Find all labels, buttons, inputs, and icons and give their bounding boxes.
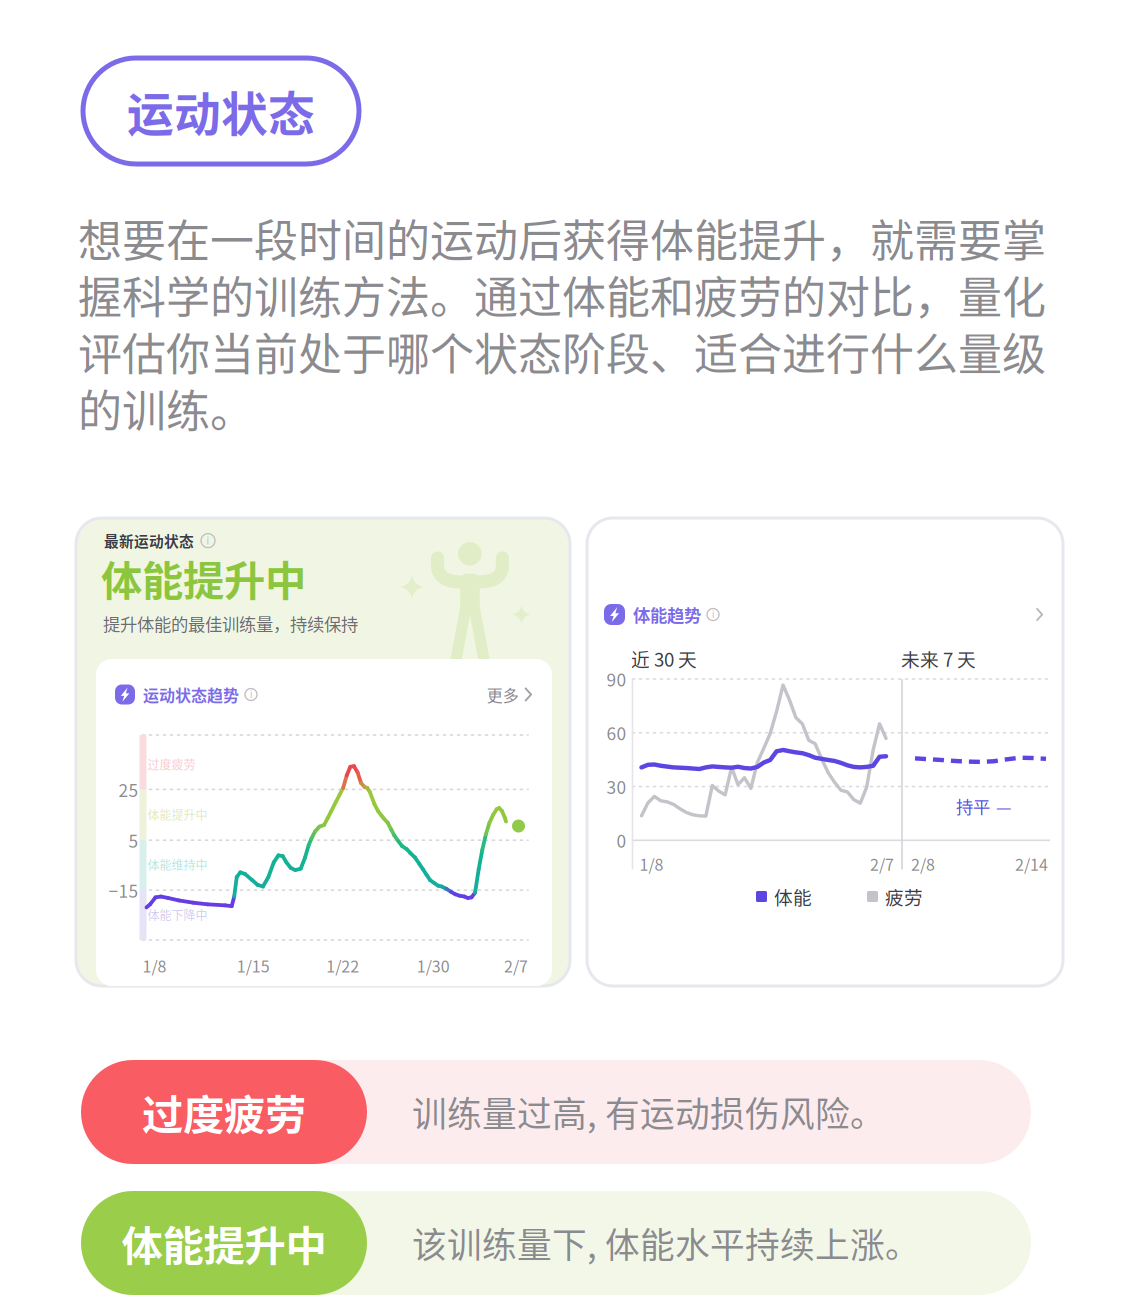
staticText: 2/14: [1015, 852, 1048, 875]
staticText: 更多: [487, 683, 519, 706]
staticText: 体能提升中: [121, 1213, 326, 1273]
staticText: 想要在一段时间的运动后获得体能提升，就需要掌握科学的训练方法。通过体能和疲劳的对…: [78, 206, 1046, 440]
staticText: 2/8: [911, 852, 935, 875]
staticText: 30: [606, 774, 626, 799]
staticText: 2/7: [504, 954, 528, 977]
staticText: 近 30 天: [631, 645, 697, 672]
staticText: 60: [606, 720, 626, 745]
staticText: 体能下降中: [147, 906, 207, 924]
staticText: 5: [128, 828, 138, 853]
staticText: 疲劳: [885, 883, 923, 910]
staticText: 体能趋势: [633, 602, 701, 627]
staticText: 25: [118, 777, 138, 802]
staticText: 提升体能的最佳训练量，持续保持: [103, 611, 358, 636]
button[interactable]: 体能提升中: [81, 1191, 1031, 1295]
staticText: 该训练量下, 体能水平持续上涨。: [412, 1218, 920, 1268]
staticText: 过度疲劳: [147, 755, 195, 773]
staticText: 过度疲劳: [142, 1082, 306, 1142]
staticText: 1/30: [417, 954, 450, 977]
staticText: 训练量过高, 有运动损伤风险。: [412, 1087, 885, 1137]
staticText: 持平: [956, 793, 990, 818]
staticText: 体能提升中: [147, 806, 207, 823]
staticText: i: [206, 534, 209, 547]
staticText: 运动状态趋势: [143, 683, 239, 706]
button[interactable]: 过度疲劳: [81, 1060, 1031, 1164]
staticText: 运动状态: [127, 77, 315, 145]
staticText: 1/15: [237, 954, 270, 977]
staticText: 未来 7 天: [901, 645, 976, 672]
staticText: 1/8: [639, 852, 663, 875]
staticText: —: [996, 793, 1011, 818]
button[interactable]: 运动状态趋势: [115, 684, 533, 705]
staticText: 90: [606, 666, 626, 692]
staticText: 体能维持中: [147, 856, 207, 873]
staticText: 体能提升中: [101, 548, 306, 608]
button[interactable]: 体能趋势: [604, 604, 1044, 625]
staticText: i: [250, 689, 252, 700]
staticText: i: [712, 609, 714, 620]
staticText: 2/7: [870, 852, 894, 875]
staticText: −15: [108, 878, 138, 903]
staticText: 最新运动状态: [104, 530, 194, 551]
staticText: 0: [616, 828, 626, 853]
staticText: 体能: [774, 883, 812, 910]
staticText: 1/8: [142, 954, 166, 977]
button[interactable]: 运动状态: [83, 58, 359, 164]
staticText: 1/22: [326, 954, 359, 977]
